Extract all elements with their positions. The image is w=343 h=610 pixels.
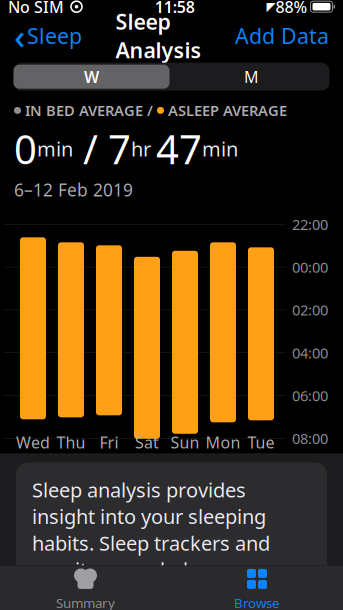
staticText: ASLEEP AVERAGE bbox=[164, 101, 287, 120]
staticText: Sleep bbox=[27, 21, 82, 50]
staticText: 08:00 bbox=[292, 429, 328, 448]
staticText: / bbox=[143, 101, 157, 120]
staticText: 02:00 bbox=[292, 300, 328, 320]
staticText: Sleep Analysis bbox=[115, 7, 201, 64]
button[interactable]: W bbox=[11, 63, 171, 91]
staticText: Thu bbox=[56, 432, 85, 453]
staticText: 06:00 bbox=[292, 386, 328, 405]
staticText: 47 bbox=[156, 122, 202, 175]
staticText: hr bbox=[131, 135, 156, 162]
staticText: ◤ bbox=[266, 0, 275, 13]
staticText: Browse bbox=[234, 594, 280, 610]
staticText: 88% bbox=[275, 0, 307, 17]
staticText: Sat bbox=[135, 432, 159, 453]
staticText: W bbox=[84, 66, 99, 87]
staticText: min bbox=[202, 135, 238, 162]
staticText: M bbox=[244, 66, 259, 87]
staticText: Add Data bbox=[235, 21, 329, 50]
staticText: Sun bbox=[170, 432, 199, 453]
staticText: No SIM bbox=[8, 0, 64, 17]
staticText: Sleep analysis provides insight into you… bbox=[32, 476, 270, 609]
staticText: Summary bbox=[56, 594, 115, 610]
staticText: 04:00 bbox=[292, 343, 328, 362]
staticText: Tue bbox=[247, 432, 274, 453]
staticText: IN BED AVERAGE bbox=[21, 101, 143, 120]
button[interactable]: Browse bbox=[171, 565, 343, 610]
staticText: 22:00 bbox=[292, 215, 328, 234]
staticText: 0 bbox=[14, 122, 37, 175]
staticText: 6–12 Feb 2019 bbox=[14, 178, 133, 201]
staticText: 11:58 bbox=[155, 0, 195, 17]
button[interactable]: Summary bbox=[0, 565, 171, 610]
staticText: About Sleep Analysis bbox=[16, 413, 304, 450]
staticText: 7 bbox=[108, 122, 131, 175]
button[interactable]: M bbox=[171, 63, 331, 91]
staticText: Fri bbox=[99, 432, 118, 453]
staticText: ‹ bbox=[14, 13, 25, 59]
staticText: min bbox=[37, 135, 73, 162]
staticText: Mon bbox=[205, 432, 240, 453]
staticText: Wed bbox=[16, 432, 50, 453]
button[interactable]: Add Data bbox=[227, 17, 337, 55]
staticText: / bbox=[73, 122, 108, 175]
staticText: 00:00 bbox=[292, 257, 328, 277]
button[interactable]: ‹ bbox=[6, 17, 90, 55]
